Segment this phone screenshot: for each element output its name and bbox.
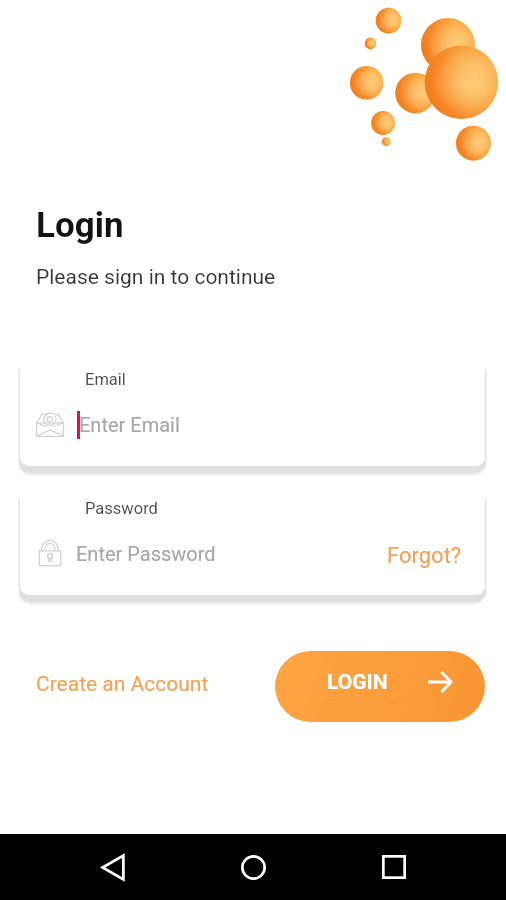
button[interactable]: Password [20, 488, 485, 595]
button[interactable]: Back [89, 843, 137, 891]
staticText: Enter Email [79, 413, 180, 436]
staticText: Email [85, 370, 126, 389]
button[interactable]: Recent apps [370, 843, 418, 891]
staticText: Please sign in to continue [36, 265, 276, 290]
button[interactable]: Home [229, 843, 277, 891]
button[interactable]: Forgot? [381, 535, 468, 577]
staticText: Login [36, 205, 124, 246]
staticText: Password [85, 499, 158, 518]
button[interactable]: LOGIN [275, 651, 485, 722]
staticText: LOGIN [327, 670, 388, 695]
button[interactable]: Create an Account [29, 663, 216, 706]
staticText: Enter Password [76, 542, 216, 565]
button[interactable]: Email [20, 359, 485, 466]
